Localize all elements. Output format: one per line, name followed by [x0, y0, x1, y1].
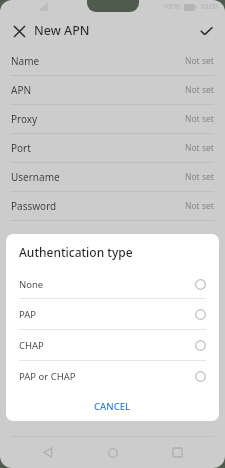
staticText: CHAP	[19, 339, 44, 352]
button[interactable]: Password	[0, 192, 225, 220]
staticText: Authentication type	[19, 244, 133, 260]
staticText: New APN	[34, 22, 90, 39]
staticText: APN	[11, 83, 32, 97]
staticText: Not set	[185, 113, 214, 125]
staticText: Not set	[185, 55, 214, 67]
button[interactable]: PAP	[6, 299, 219, 329]
button[interactable]: PAP or CHAP	[6, 361, 219, 391]
staticText: 100%	[163, 2, 181, 12]
button[interactable]: Home	[96, 437, 130, 468]
button[interactable]: Username	[0, 163, 225, 191]
staticText: Username	[11, 170, 60, 184]
button[interactable]: CHAP	[6, 330, 219, 360]
staticText: PAP	[19, 308, 37, 321]
button[interactable]: APN	[0, 76, 225, 104]
button[interactable]: CANCEL	[82, 395, 143, 418]
button[interactable]: Close	[5, 17, 33, 45]
button[interactable]: Recents	[160, 437, 194, 468]
button[interactable]: Name	[0, 47, 225, 75]
staticText: Not set	[185, 200, 214, 212]
staticText: CANCEL	[94, 400, 131, 413]
staticText: Port	[11, 141, 31, 155]
staticText: Not set	[185, 84, 214, 96]
staticText: Proxy	[11, 112, 38, 126]
button[interactable]: Save	[192, 17, 220, 45]
staticText: None	[19, 278, 44, 291]
staticText: Name	[11, 54, 40, 68]
button[interactable]: Back	[31, 437, 65, 468]
staticText: Not set	[185, 171, 214, 183]
staticText: PAP or CHAP	[19, 370, 76, 383]
staticText: Password	[11, 199, 57, 213]
staticText: 10:00	[200, 2, 218, 12]
button[interactable]: Proxy	[0, 105, 225, 133]
button[interactable]: Port	[0, 134, 225, 162]
staticText: Not set	[185, 142, 214, 154]
button[interactable]: None	[6, 270, 219, 298]
